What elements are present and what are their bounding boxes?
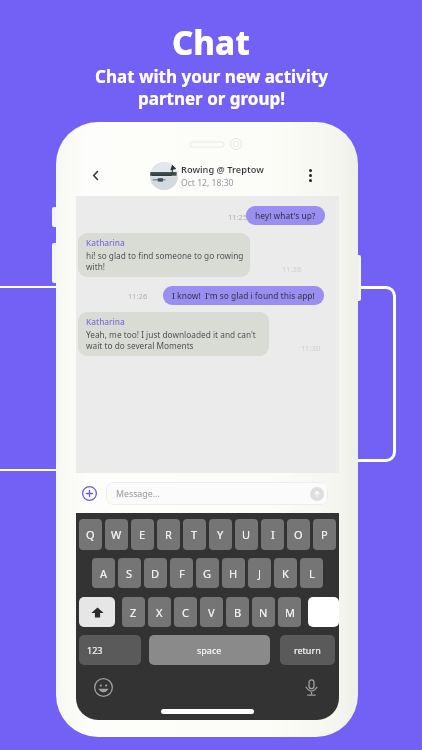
staticText: S: [126, 566, 133, 581]
button[interactable]: C: [174, 597, 197, 627]
staticText: K: [282, 566, 289, 581]
staticText: T: [191, 527, 198, 542]
button[interactable]: Shift: [79, 597, 115, 627]
button[interactable]: E: [131, 519, 154, 550]
button[interactable]: P: [313, 519, 336, 550]
button[interactable]: J: [248, 558, 271, 588]
staticText: 11:26: [282, 264, 302, 274]
staticText: 11:26: [128, 291, 148, 301]
staticText: A: [100, 566, 108, 581]
staticText: J: [258, 566, 262, 581]
button[interactable]: O: [287, 519, 310, 550]
staticText: R: [165, 527, 172, 542]
button[interactable]: Message...: [106, 482, 328, 505]
staticText: N: [259, 605, 268, 620]
staticText: O: [294, 527, 303, 542]
button[interactable]: Emoji: [94, 678, 113, 697]
staticText: E: [139, 527, 146, 542]
staticText: G: [203, 566, 212, 581]
staticText: 11:25: [228, 212, 248, 222]
button[interactable]: Z: [122, 597, 145, 627]
button[interactable]: T: [183, 519, 206, 550]
staticText: Oct 12, 18:30: [181, 177, 234, 189]
button[interactable]: F: [170, 558, 193, 588]
staticText: hi! so glad to find someone to go rowing…: [86, 250, 244, 272]
staticText: X: [156, 605, 163, 620]
button[interactable]: Add attachment: [76, 480, 102, 506]
staticText: C: [182, 605, 189, 620]
button[interactable]: U: [235, 519, 258, 550]
staticText: I know! I'm so glad i found this app!: [172, 290, 315, 301]
button[interactable]: B: [226, 597, 249, 627]
button[interactable]: S: [118, 558, 141, 588]
button[interactable]: D: [144, 558, 167, 588]
button[interactable]: Voice input: [302, 678, 321, 697]
button[interactable]: W: [105, 519, 128, 550]
button[interactable]: 123: [79, 635, 141, 665]
staticText: D: [151, 566, 160, 581]
staticText: B: [234, 605, 242, 620]
staticText: Chat: [172, 20, 250, 65]
staticText: F: [179, 566, 185, 581]
button[interactable]: I: [261, 519, 284, 550]
staticText: Rowing @ Treptow: [181, 163, 264, 176]
staticText: hey! what's up?: [255, 210, 316, 221]
staticText: space: [197, 644, 222, 656]
button[interactable]: V: [200, 597, 223, 627]
button[interactable]: A: [92, 558, 115, 588]
button[interactable]: Backspace: [308, 597, 339, 627]
staticText: W: [111, 527, 122, 542]
staticText: 11:30: [301, 343, 321, 353]
staticText: Q: [86, 527, 95, 542]
button[interactable]: return: [280, 635, 335, 665]
staticText: return: [294, 644, 321, 656]
staticText: U: [242, 527, 251, 542]
button[interactable]: L: [300, 558, 323, 588]
button[interactable]: N: [252, 597, 275, 627]
staticText: Yeah, me too! I just downloaded it and c…: [86, 329, 263, 351]
button[interactable]: Y: [209, 519, 232, 550]
staticText: V: [208, 605, 215, 620]
button[interactable]: X: [148, 597, 171, 627]
staticText: M: [285, 605, 295, 620]
staticText: Katharina: [86, 237, 125, 248]
staticText: L: [309, 566, 315, 581]
button[interactable]: H: [222, 558, 245, 588]
button[interactable]: More options: [299, 164, 321, 186]
staticText: Y: [217, 527, 224, 542]
button[interactable]: Back: [84, 164, 106, 186]
staticText: H: [229, 566, 238, 581]
staticText: Z: [130, 605, 137, 620]
staticText: Chat with your new activity partner or g…: [95, 65, 328, 110]
staticText: Message...: [116, 488, 160, 500]
staticText: P: [321, 527, 328, 542]
staticText: I: [271, 527, 275, 542]
button[interactable]: Q: [79, 519, 102, 550]
staticText: Katharina: [86, 316, 125, 327]
button[interactable]: M: [278, 597, 301, 627]
button[interactable]: space: [149, 635, 270, 665]
staticText: 123: [87, 644, 103, 656]
button[interactable]: K: [274, 558, 297, 588]
button[interactable]: R: [157, 519, 180, 550]
button[interactable]: G: [196, 558, 219, 588]
